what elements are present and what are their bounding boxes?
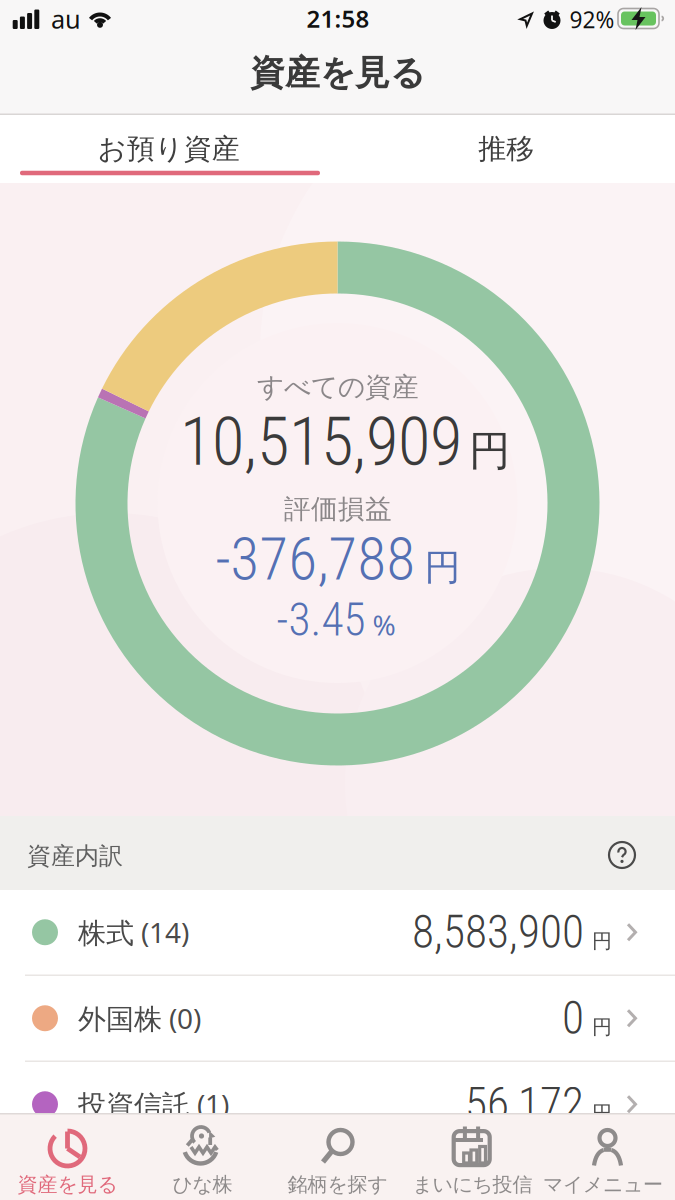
button[interactable]: 外国株 (0) (0, 976, 675, 1062)
staticText: 資産内訳 (27, 841, 123, 871)
staticText: まいにち投信 (412, 1172, 532, 1197)
button[interactable]: 投資信託 (1) (0, 1062, 675, 1148)
staticText: マイメニュー (543, 1172, 663, 1197)
staticText: 評価損益 (284, 493, 392, 525)
staticText: 銘柄を探す (287, 1172, 387, 1197)
button[interactable]: 株式 (14) (0, 890, 675, 976)
button[interactable]: マイメニュー (540, 1114, 675, 1200)
staticText: ひな株 (172, 1172, 232, 1197)
staticText: -376,788 (215, 525, 415, 594)
staticText: 投資信託 (1) (78, 1086, 229, 1123)
button[interactable]: お預り資産 (0, 115, 337, 183)
staticText: すべての資産 (257, 371, 419, 403)
staticText: -3.45 (276, 593, 365, 646)
staticText: 資産を見る (250, 52, 425, 94)
staticText: 56,172 (465, 1078, 584, 1131)
staticText: 21:58 (306, 3, 369, 34)
staticText: au (51, 2, 81, 36)
staticText: 円 (592, 1101, 612, 1125)
staticText: 円 (592, 929, 612, 953)
staticText: お預り資産 (98, 132, 240, 166)
button[interactable]: 資産を見る (0, 1114, 135, 1200)
button[interactable]: まいにち投信 (405, 1114, 540, 1200)
staticText: 92% (569, 4, 614, 34)
staticText: 資産を見る (17, 1172, 117, 1197)
button[interactable]: ヘルプ (604, 837, 640, 873)
staticText: 外国株 (0) (78, 1000, 201, 1037)
staticText: % (372, 606, 395, 643)
staticText: 0 (562, 992, 584, 1045)
staticText: 円 (469, 426, 510, 476)
staticText: 8,583,900 (412, 906, 584, 959)
staticText: 推移 (478, 132, 534, 166)
staticText: 円 (592, 1015, 612, 1039)
button[interactable]: 銘柄を探す (270, 1114, 405, 1200)
staticText: 円 (424, 545, 460, 590)
staticText: 株式 (14) (78, 914, 189, 951)
button[interactable]: ひな株 (135, 1114, 270, 1200)
button[interactable]: 推移 (337, 115, 675, 183)
staticText: 10,515,909 (180, 403, 462, 481)
